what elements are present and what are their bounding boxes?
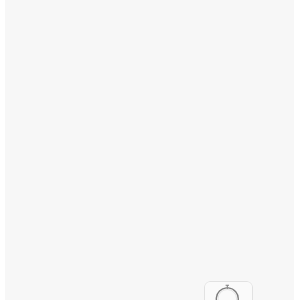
button[interactable]: Timer	[204, 281, 253, 300]
